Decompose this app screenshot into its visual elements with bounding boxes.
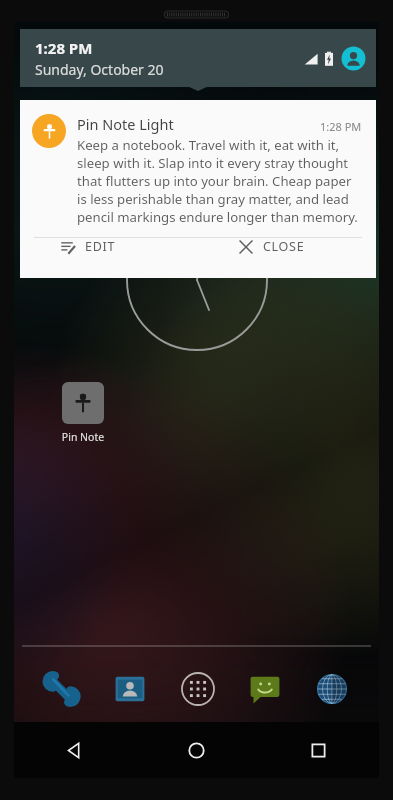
button[interactable]: Browser: [298, 660, 365, 718]
button[interactable]: CLOSE: [198, 238, 376, 255]
staticText: CLOSE: [263, 238, 305, 255]
staticText: 1:28 PM: [320, 119, 362, 134]
staticText: Pin Note: [45, 430, 121, 444]
button[interactable]: Recents: [257, 722, 379, 778]
button[interactable]: Pin Note: [45, 382, 121, 444]
staticText: Sunday, October 20: [35, 60, 164, 79]
button[interactable]: User profile: [341, 46, 366, 71]
button[interactable]: Phone: [28, 660, 96, 718]
button[interactable]: Contacts: [96, 660, 164, 718]
button[interactable]: Back: [14, 722, 135, 778]
button[interactable]: Messaging: [231, 660, 298, 718]
button[interactable]: EDIT: [20, 238, 198, 255]
button[interactable]: Home: [135, 722, 257, 778]
button[interactable]: Apps: [164, 660, 231, 718]
button[interactable]: Pin Note Light: [20, 100, 376, 278]
staticText: Pin Note Light: [77, 114, 314, 134]
staticText: 1:28 PM: [35, 38, 93, 58]
staticText: Keep a notebook. Travel with it, eat wit…: [77, 136, 362, 226]
staticText: EDIT: [85, 238, 116, 255]
